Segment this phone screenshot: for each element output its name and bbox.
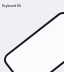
staticText: Keyboard Kit (2, 4, 22, 8)
